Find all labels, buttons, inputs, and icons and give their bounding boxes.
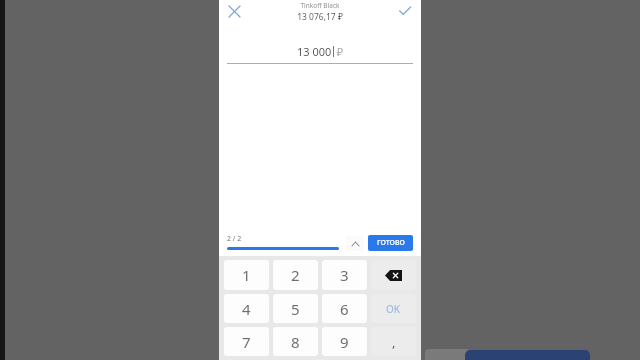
- staticText: 9: [340, 332, 349, 352]
- button[interactable]: 3: [322, 260, 367, 290]
- staticText: 6: [340, 299, 349, 319]
- button[interactable]: Confirm: [394, 0, 416, 22]
- staticText: 13 076,17 ₽: [297, 11, 343, 23]
- button[interactable]: Comma: [371, 327, 416, 356]
- staticText: ₽: [334, 44, 344, 59]
- staticText: Tinkoff Black: [300, 1, 340, 10]
- button[interactable]: 4: [224, 294, 269, 323]
- staticText: 3: [340, 265, 349, 285]
- button[interactable]: 6: [322, 294, 367, 323]
- staticText: 13 000: [297, 44, 332, 59]
- staticText: 1: [242, 265, 251, 285]
- button[interactable]: ГОТОВО: [368, 235, 413, 251]
- button[interactable]: Close: [223, 0, 245, 22]
- button[interactable]: Backspace: [371, 260, 416, 290]
- staticText: 7: [242, 332, 251, 352]
- staticText: 2 / 2: [227, 234, 242, 244]
- staticText: 8: [291, 332, 300, 352]
- staticText: 2: [291, 265, 300, 285]
- button[interactable]: 8: [273, 327, 318, 356]
- staticText: 5: [291, 299, 300, 319]
- staticText: ГОТОВО: [377, 238, 405, 248]
- button[interactable]: 9: [322, 327, 367, 356]
- button[interactable]: 2: [273, 260, 318, 290]
- button[interactable]: 1: [224, 260, 269, 290]
- button[interactable]: OK: [371, 294, 416, 323]
- staticText: ,: [392, 333, 396, 351]
- button[interactable]: Collapse: [346, 236, 364, 251]
- staticText: OK: [386, 302, 401, 316]
- staticText: 4: [242, 299, 251, 319]
- button[interactable]: 5: [273, 294, 318, 323]
- button[interactable]: 7: [224, 327, 269, 356]
